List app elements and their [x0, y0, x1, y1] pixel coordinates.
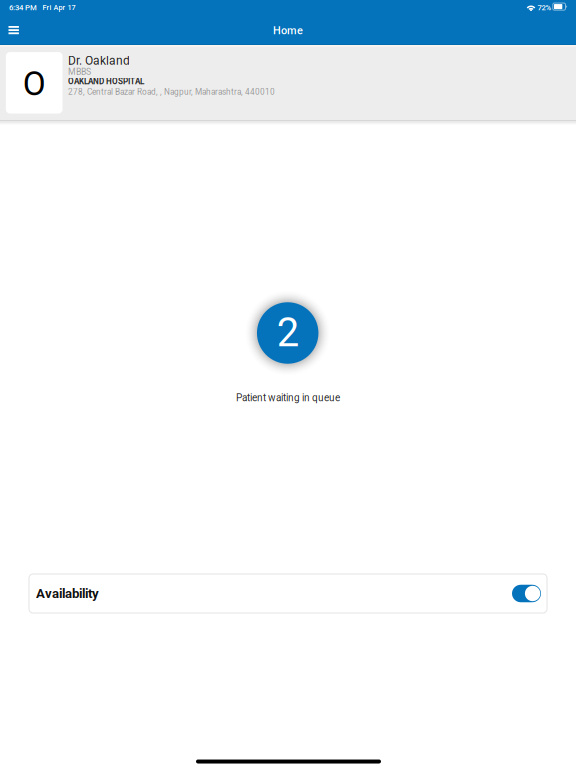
staticText: Dr. Oakland [68, 53, 130, 68]
staticText: O [23, 64, 46, 103]
staticText: 278, Central Bazar Road, , Nagpur, Mahar… [68, 87, 275, 97]
staticText: 2 [277, 309, 299, 356]
staticText: MBBS [68, 67, 91, 77]
button[interactable]: Availability [29, 574, 547, 613]
staticText: OAKLAND HOSPITAL [68, 77, 144, 86]
staticText: Fri Apr 17 [42, 3, 75, 12]
staticText: 72% [537, 3, 551, 12]
staticText: Availability [36, 586, 99, 601]
button[interactable]: Open navigation menu [0, 16, 28, 45]
staticText: 6:34 PM [9, 3, 37, 12]
staticText: Home [273, 24, 303, 37]
staticText: Patient waiting in queue [236, 392, 340, 404]
